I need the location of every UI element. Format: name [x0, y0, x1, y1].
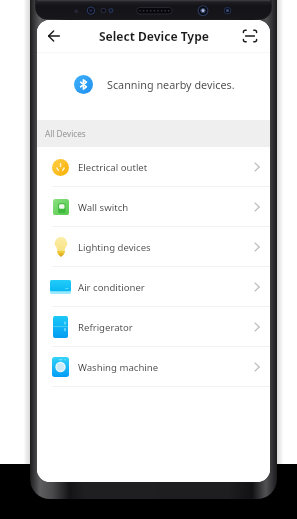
button[interactable]: Back [43, 25, 65, 47]
button[interactable]: Air conditioner [37, 267, 270, 307]
staticText: Air conditioner [78, 281, 145, 294]
button[interactable]: Scan [241, 27, 259, 45]
button[interactable]: Refrigerator [37, 307, 270, 347]
staticText: Refrigerator [78, 321, 133, 334]
staticText: All Devices [45, 128, 86, 139]
button[interactable]: Wall switch [37, 187, 270, 227]
button[interactable]: Washing machine [37, 347, 270, 387]
staticText: Select Device Type [99, 28, 209, 44]
button[interactable]: Electrical outlet [37, 147, 270, 187]
staticText: Washing machine [78, 361, 159, 374]
staticText: Scanning nearby devices. [107, 77, 235, 92]
staticText: Wall switch [78, 201, 129, 214]
staticText: Lighting devices [78, 241, 151, 254]
button[interactable]: Lighting devices [37, 227, 270, 267]
staticText: Electrical outlet [78, 161, 148, 174]
